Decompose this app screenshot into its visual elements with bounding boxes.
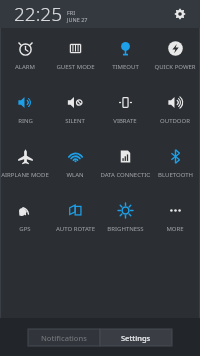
staticText: AUTO ROTATE	[56, 225, 95, 233]
button[interactable]: WLAN	[50, 136, 100, 190]
button[interactable]: ALARM	[0, 28, 50, 82]
button[interactable]: DATA CONNECTION	[100, 136, 150, 190]
staticText: GPS	[19, 225, 31, 233]
staticText: GUEST MODE	[56, 63, 95, 71]
staticText: RING	[18, 117, 33, 125]
staticText: QUICK POWER	[154, 63, 196, 71]
button[interactable]: AUTO ROTATE	[50, 190, 100, 244]
staticText: BLUETOOTH	[158, 171, 193, 179]
button[interactable]: SILENT	[50, 82, 100, 136]
staticText: ALARM	[15, 63, 35, 71]
staticText: SILENT	[65, 117, 85, 125]
staticText: VIBRATE	[113, 117, 137, 125]
staticText: TIMEOUT	[112, 63, 139, 71]
button[interactable]: QUICK POWER	[150, 28, 200, 82]
staticText: Settings	[121, 333, 151, 343]
button[interactable]: RING	[0, 82, 50, 136]
staticText: JUNE 27	[67, 16, 88, 23]
staticText: FRI	[67, 9, 76, 16]
button[interactable]: OUTDOOR	[150, 82, 200, 136]
staticText: WLAN	[66, 171, 84, 179]
button[interactable]: Notifications	[28, 329, 100, 346]
staticText: AIRPLANE MODE	[1, 171, 49, 179]
button[interactable]: GUEST MODE	[50, 28, 100, 82]
button[interactable]: Settings	[100, 329, 172, 346]
staticText: DATA CONNECTION	[100, 171, 150, 179]
staticText: MORE	[166, 225, 184, 233]
staticText: OUTDOOR	[160, 117, 190, 125]
staticText: BRIGHTNESS	[107, 225, 144, 233]
button[interactable]: Settings	[168, 2, 192, 26]
button[interactable]: MORE	[150, 190, 200, 244]
button[interactable]: TIMEOUT	[100, 28, 150, 82]
button[interactable]: BLUETOOTH	[150, 136, 200, 190]
staticText: Notifications	[41, 333, 87, 343]
button[interactable]: GPS	[0, 190, 50, 244]
staticText: 22:25	[14, 1, 63, 27]
button[interactable]: AIRPLANE MODE	[0, 136, 50, 190]
button[interactable]: BRIGHTNESS	[100, 190, 150, 244]
button[interactable]: VIBRATE	[100, 82, 150, 136]
